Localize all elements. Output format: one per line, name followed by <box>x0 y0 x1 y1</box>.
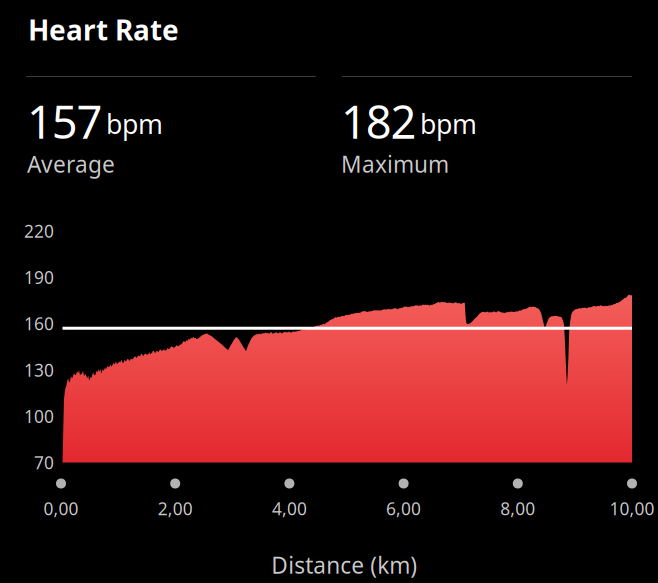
staticText: 100 <box>24 405 54 428</box>
staticText: Heart Rate <box>28 11 179 48</box>
staticText: 8,00 <box>500 497 535 520</box>
staticText: 2,00 <box>158 497 193 520</box>
staticText: bpm <box>420 106 477 141</box>
staticText: 220 <box>24 219 54 242</box>
staticText: 0,00 <box>43 497 78 520</box>
staticText: 70 <box>34 451 54 474</box>
staticText: 190 <box>24 266 54 289</box>
staticText: bpm <box>106 106 163 141</box>
staticText: Average <box>27 149 115 179</box>
staticText: 4,00 <box>272 497 307 520</box>
staticText: 160 <box>24 312 54 335</box>
staticText: Distance (km) <box>271 550 417 580</box>
staticText: Maximum <box>341 149 449 179</box>
staticText: 157 <box>27 91 103 151</box>
staticText: 182 <box>341 91 417 151</box>
staticText: 10,00 <box>609 497 654 520</box>
staticText: 130 <box>24 358 54 381</box>
staticText: 6,00 <box>386 497 421 520</box>
